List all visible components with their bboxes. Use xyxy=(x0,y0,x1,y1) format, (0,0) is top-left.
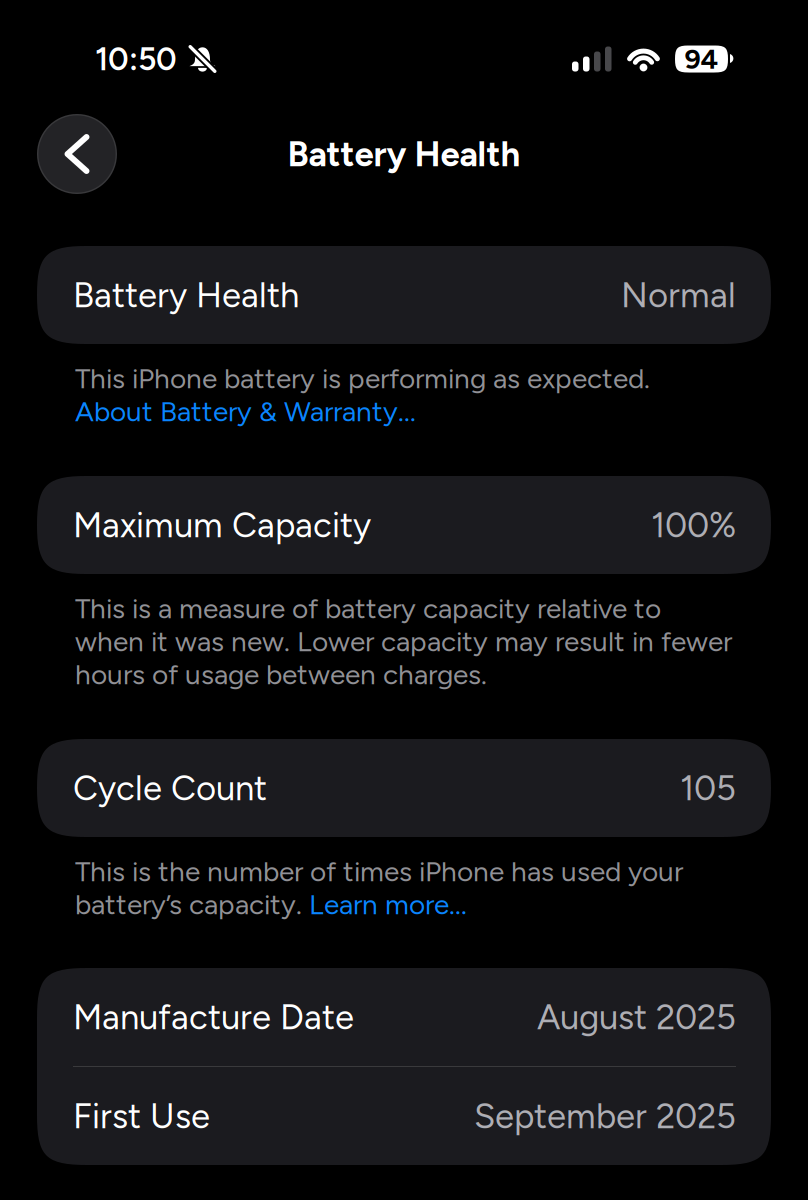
staticText: Normal xyxy=(621,274,736,316)
button[interactable]: First Use xyxy=(37,1067,771,1165)
staticText: This iPhone battery is performing as exp… xyxy=(75,362,650,395)
staticText: 105 xyxy=(680,767,736,809)
staticText: This is a measure of battery capacity re… xyxy=(75,592,661,625)
staticText: About Battery & Warranty... xyxy=(75,395,416,428)
button[interactable]: Battery Health xyxy=(37,246,771,344)
staticText: Battery Health xyxy=(73,274,299,316)
button[interactable]: Back xyxy=(37,114,117,194)
staticText: This is the number of times iPhone has u… xyxy=(75,855,683,888)
staticText: September 2025 xyxy=(474,1095,736,1137)
staticText: 94 xyxy=(684,42,718,76)
staticText: when it was new. Lower capacity may resu… xyxy=(75,625,732,658)
staticText: 10:50 xyxy=(95,40,177,78)
staticText: Learn more... xyxy=(309,888,467,921)
button[interactable]: Learn more... xyxy=(309,888,467,921)
staticText: First Use xyxy=(73,1095,210,1137)
staticText: 100% xyxy=(651,504,736,546)
staticText: battery’s capacity. xyxy=(75,888,309,921)
button[interactable]: About Battery & Warranty... xyxy=(75,395,416,428)
staticText: Battery Health xyxy=(287,133,520,175)
button[interactable]: Manufacture Date xyxy=(37,968,771,1066)
staticText: August 2025 xyxy=(537,996,736,1038)
button[interactable]: Maximum Capacity xyxy=(37,476,771,574)
staticText: hours of usage between charges. xyxy=(75,658,487,691)
staticText: Maximum Capacity xyxy=(73,504,371,546)
button[interactable]: Cycle Count xyxy=(37,739,771,837)
staticText: Manufacture Date xyxy=(73,996,354,1038)
staticText: Cycle Count xyxy=(73,767,267,809)
